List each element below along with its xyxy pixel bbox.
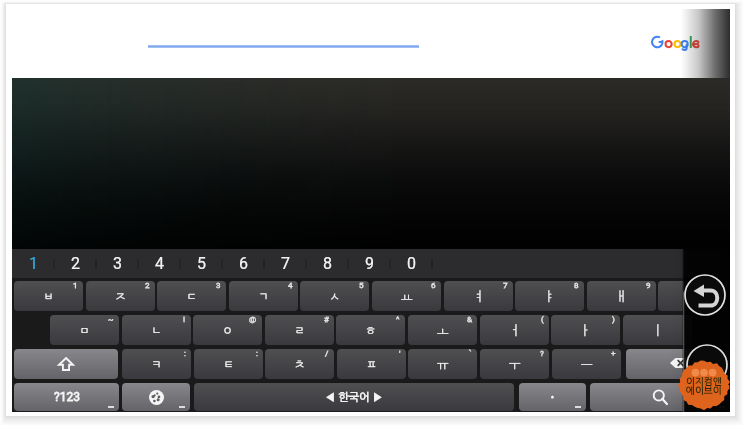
button[interactable]: ㅂ (14, 281, 83, 311)
button[interactable]: ㅡ (552, 349, 621, 379)
staticText: # (324, 315, 329, 324)
button[interactable]: ㅌ (194, 349, 263, 379)
staticText: · (550, 387, 555, 407)
button[interactable]: 8 (306, 249, 348, 278)
button[interactable]: ㅑ (515, 281, 584, 311)
button[interactable]: ㅋ (122, 349, 191, 379)
button[interactable]: Search (590, 383, 730, 411)
staticText: / (325, 349, 329, 358)
staticText: 1 (29, 254, 38, 273)
button[interactable]: ㅣ (623, 315, 692, 345)
staticText: ㅑ (543, 290, 556, 303)
button[interactable]: ㅕ (444, 281, 513, 311)
button[interactable]: 1 (12, 249, 54, 278)
staticText: ◀ 한국어 ▶ (325, 392, 383, 403)
staticText: ? (540, 349, 544, 358)
staticText: ㅣ (651, 324, 664, 337)
staticText: ㅅ (328, 290, 341, 303)
button[interactable]: 2 (54, 249, 96, 278)
button[interactable]: ㄴ (122, 315, 191, 345)
button[interactable]: ㅎ (336, 315, 405, 345)
staticText: ` (469, 349, 472, 358)
button[interactable]: ㅔ (658, 281, 727, 311)
staticText: ㅇ (221, 324, 234, 337)
staticText: ! (183, 315, 186, 324)
staticText: ㄱ (257, 290, 270, 303)
button[interactable]: ㅈ (86, 281, 155, 311)
staticText: 7 (503, 281, 508, 290)
staticText: 이지컴앤 (686, 377, 722, 386)
staticText: ?123 (54, 390, 80, 404)
staticText: ㅌ (222, 358, 235, 371)
staticText: 9 (646, 281, 651, 290)
staticText: ㅊ (293, 358, 306, 371)
button[interactable]: ㅠ (408, 349, 477, 379)
button[interactable]: ㅗ (408, 315, 477, 345)
staticText: ) (612, 315, 615, 324)
button[interactable]: ㅅ (300, 281, 369, 311)
button[interactable]: ㅊ (265, 349, 334, 379)
staticText: ㅗ (436, 324, 449, 337)
staticText: ㅈ (114, 290, 127, 303)
staticText: 7 (281, 254, 290, 273)
button[interactable]: Change keyboard language (122, 383, 190, 411)
staticText: 4 (155, 254, 164, 273)
staticText: ㅜ (508, 358, 521, 371)
button[interactable]: ㅍ (337, 349, 406, 379)
button[interactable]: ㅏ (551, 315, 620, 345)
staticText: 1 (73, 281, 78, 290)
staticText: 8 (574, 281, 579, 290)
button[interactable]: ㄱ (229, 281, 298, 311)
button[interactable]: ㅐ (587, 281, 656, 311)
staticText: ㅛ (400, 290, 413, 303)
button[interactable]: ?123 (14, 383, 119, 411)
staticText: + (611, 349, 616, 358)
button[interactable]: · (519, 383, 586, 411)
staticText: : (256, 349, 258, 358)
button[interactable]: ㅁ (50, 315, 119, 345)
staticText: 0 (717, 281, 722, 290)
staticText: 8 (323, 254, 332, 273)
staticText: ( (541, 315, 544, 324)
button[interactable]: ㅜ (480, 349, 549, 379)
button[interactable]: 9 (348, 249, 390, 278)
button[interactable]: ◀ 한국어 ▶ (194, 383, 514, 411)
staticText: ㅕ (472, 290, 485, 303)
button[interactable]: ㅓ (480, 315, 549, 345)
staticText: & (467, 315, 472, 324)
staticText: ㅁ (78, 324, 91, 337)
staticText: ~ (108, 315, 114, 324)
button[interactable]: 5 (180, 249, 222, 278)
button[interactable]: 6 (222, 249, 264, 278)
button[interactable]: 7 (264, 249, 306, 278)
button[interactable]: Back (684, 274, 726, 316)
button[interactable]: 0 (390, 249, 432, 278)
staticText: @ (249, 315, 257, 324)
staticText: ㅋ (150, 358, 163, 371)
staticText: 9 (365, 254, 374, 273)
button[interactable]: ㅇ (193, 315, 262, 345)
staticText: 5 (197, 254, 206, 273)
staticText: 6 (431, 281, 436, 290)
staticText: 2 (71, 254, 80, 273)
staticText: ㄷ (185, 290, 198, 303)
staticText: 6 (239, 254, 248, 273)
staticText: ㄹ (293, 324, 306, 337)
staticText: 0 (407, 254, 416, 273)
button[interactable]: ㄹ (265, 315, 334, 345)
staticText: 3 (113, 254, 122, 273)
staticText: 3 (216, 281, 221, 290)
staticText: ㅓ (508, 324, 521, 337)
button[interactable]: Backspace (626, 349, 730, 379)
staticText: 에이브이 (686, 386, 722, 395)
button[interactable]: ㄷ (157, 281, 226, 311)
button[interactable]: ㅛ (372, 281, 441, 311)
button[interactable]: Shift (14, 349, 118, 379)
staticText: ^ (396, 315, 400, 324)
staticText: 5 (359, 281, 364, 290)
button[interactable]: 3 (96, 249, 138, 278)
button[interactable]: Watermark logo (678, 360, 730, 410)
staticText: : (184, 349, 186, 358)
staticText: ㄴ (150, 324, 163, 337)
button[interactable]: 4 (138, 249, 180, 278)
